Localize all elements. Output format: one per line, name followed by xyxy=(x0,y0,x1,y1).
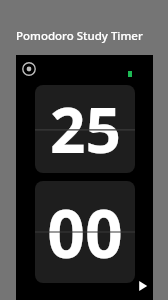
button[interactable]: 00 xyxy=(35,181,135,283)
staticText: 25 xyxy=(50,87,121,171)
button[interactable]: 25 xyxy=(35,85,135,173)
button[interactable]: Start timer xyxy=(136,279,150,293)
button[interactable]: Focus mode xyxy=(22,62,36,76)
staticText: Pomodoro Study Timer xyxy=(16,28,143,44)
staticText: 00 xyxy=(47,187,123,277)
